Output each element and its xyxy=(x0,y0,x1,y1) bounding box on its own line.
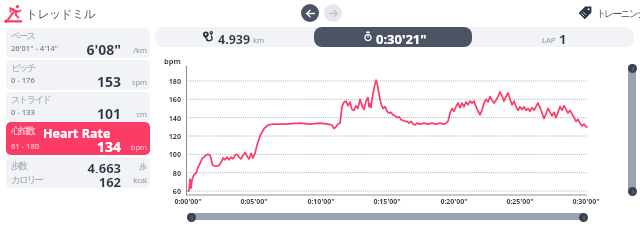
staticText: km xyxy=(253,35,265,45)
staticText: 0:00'00" xyxy=(163,197,213,207)
button[interactable]: Horizontal scroll xyxy=(187,213,586,220)
staticText: 4,663 xyxy=(61,159,121,173)
staticText: 4.939 xyxy=(218,31,251,47)
staticText: 120 xyxy=(157,131,181,141)
staticText: 歩数 xyxy=(11,160,27,172)
staticText: 心拍数 xyxy=(11,125,34,137)
staticText: 180 xyxy=(157,76,181,86)
staticText: ピッチ xyxy=(11,62,35,74)
staticText: 0 - 133 xyxy=(11,107,35,117)
staticText: spm xyxy=(121,77,147,87)
button[interactable]: 0:30'21" xyxy=(314,27,472,47)
button[interactable]: 4.939 xyxy=(155,27,314,47)
button[interactable] xyxy=(6,157,150,188)
staticText: 153 xyxy=(61,72,121,90)
staticText: 80 xyxy=(157,168,181,178)
staticText: ペース xyxy=(11,30,35,42)
staticText: 0:15'00" xyxy=(362,197,412,207)
button[interactable]: トレーニング xyxy=(577,3,640,23)
staticText: ストライド xyxy=(11,94,51,106)
staticText: bpm xyxy=(164,56,181,66)
staticText: LAP xyxy=(542,35,556,45)
staticText: カロリー xyxy=(11,174,43,186)
staticText: Heart Rate xyxy=(43,125,111,142)
staticText: 60 xyxy=(157,186,181,196)
staticText: 歩 xyxy=(121,162,147,171)
button[interactable]: ペース xyxy=(6,28,150,58)
staticText: 0:25'00" xyxy=(495,197,545,207)
staticText: 140 xyxy=(157,113,181,123)
staticText: 0:05'00" xyxy=(229,197,279,207)
staticText: トレッドミル xyxy=(26,6,95,21)
staticText: 61 - 180 xyxy=(11,141,40,151)
staticText: 1 xyxy=(559,30,567,47)
staticText: 160 xyxy=(157,94,181,104)
staticText: 134 xyxy=(61,137,121,155)
button[interactable]: トレッドミル xyxy=(3,2,95,24)
staticText: 0:30'00" xyxy=(561,197,611,207)
staticText: 0 - 176 xyxy=(11,75,35,85)
staticText: 162 xyxy=(61,173,121,187)
staticText: bpm xyxy=(121,142,147,152)
staticText: 0:30'21" xyxy=(376,30,427,47)
button[interactable]: Next workout xyxy=(324,4,342,22)
staticText: 101 xyxy=(61,104,121,122)
staticText: トレーニング xyxy=(596,7,640,20)
button[interactable]: 心拍数 xyxy=(6,122,150,155)
button[interactable]: ストライド xyxy=(6,92,150,122)
staticText: 0:20'00" xyxy=(429,197,479,207)
staticText: 100 xyxy=(157,149,181,159)
staticText: 0:10'00" xyxy=(296,197,346,207)
staticText: /km xyxy=(121,45,147,55)
button[interactable]: Previous workout xyxy=(301,4,319,22)
staticText: 26'01" - 4'14" xyxy=(11,43,58,53)
staticText: kcal xyxy=(121,175,147,185)
button[interactable]: LAP xyxy=(472,27,634,47)
button[interactable]: ピッチ xyxy=(6,60,150,90)
button[interactable]: Vertical scroll xyxy=(628,64,636,194)
staticText: 6'08" xyxy=(61,40,121,58)
staticText: cm xyxy=(121,109,147,119)
